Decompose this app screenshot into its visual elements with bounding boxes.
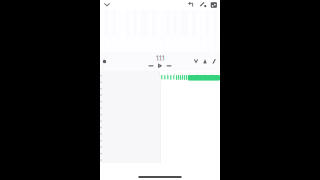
staticText: 1.1.1 <box>156 55 164 62</box>
button[interactable]: Loop Browser <box>210 0 217 10</box>
button[interactable]: Rewind <box>148 63 154 68</box>
button[interactable]: Count In <box>202 58 208 64</box>
button[interactable]: Instrument <box>101 0 114 10</box>
button[interactable]: Settings <box>199 0 208 10</box>
button[interactable]: Play <box>157 63 163 68</box>
button[interactable]: Undo <box>187 0 196 10</box>
button[interactable]: Metronome <box>100 52 109 71</box>
button[interactable]: Fast Forward <box>166 63 172 68</box>
button[interactable]: Mixer <box>193 58 199 64</box>
button[interactable]: Settings <box>211 58 217 64</box>
